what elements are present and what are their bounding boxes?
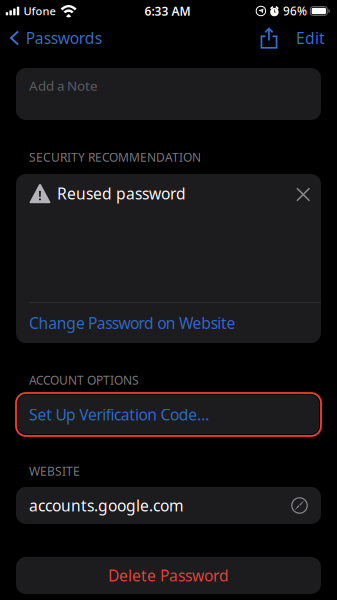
button[interactable]: Change Password on Website: [16, 303, 321, 343]
button[interactable]: Share: [254, 26, 284, 50]
staticText: accounts.google.com: [29, 495, 184, 516]
button[interactable]: Passwords: [0, 23, 110, 53]
staticText: Passwords: [26, 27, 102, 49]
staticText: Set Up Verification Code…: [29, 404, 209, 425]
button[interactable]: Open in Safari: [287, 493, 312, 518]
staticText: WEBSITE: [29, 463, 80, 479]
staticText: Reused password: [57, 183, 186, 204]
staticText: Change Password on Website: [29, 312, 235, 334]
staticText: SECURITY RECOMMENDATION: [29, 149, 201, 165]
button[interactable]: Dismiss: [287, 181, 313, 206]
button[interactable]: Delete Password: [16, 557, 321, 594]
staticText: Add a Note: [29, 76, 98, 95]
staticText: ACCOUNT OPTIONS: [29, 372, 139, 388]
button[interactable]: Set Up Verification Code…: [16, 393, 321, 436]
staticText: Delete Password: [108, 565, 229, 586]
button[interactable]: Edit: [288, 23, 333, 53]
staticText: 6:33 AM: [144, 3, 190, 19]
staticText: Edit: [296, 27, 325, 49]
staticText: Ufone: [23, 3, 55, 19]
staticText: 96%: [283, 3, 307, 19]
